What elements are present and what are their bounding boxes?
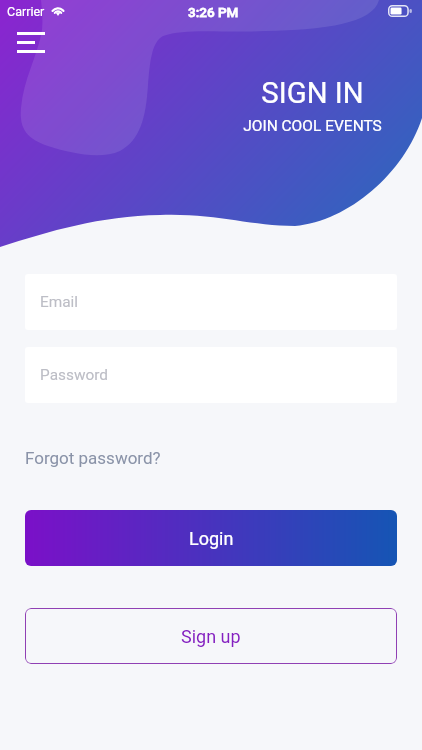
staticText: Email bbox=[40, 293, 79, 311]
staticText: Password bbox=[40, 366, 108, 384]
button[interactable]: Sign up bbox=[25, 608, 397, 664]
staticText: JOIN COOL EVENTS bbox=[243, 117, 382, 135]
staticText: Forgot password? bbox=[25, 448, 161, 468]
staticText: Sign up bbox=[181, 626, 241, 647]
staticText: 3:26 PM bbox=[188, 4, 239, 20]
staticText: Login bbox=[189, 528, 234, 549]
staticText: SIGN IN bbox=[261, 76, 364, 110]
button[interactable]: Menu bbox=[17, 31, 49, 55]
button[interactable]: Forgot password? bbox=[25, 442, 161, 474]
staticText: Carrier bbox=[7, 4, 45, 19]
button[interactable]: Password bbox=[25, 347, 397, 403]
button[interactable]: Login bbox=[25, 510, 397, 566]
button[interactable]: Email bbox=[25, 274, 397, 330]
